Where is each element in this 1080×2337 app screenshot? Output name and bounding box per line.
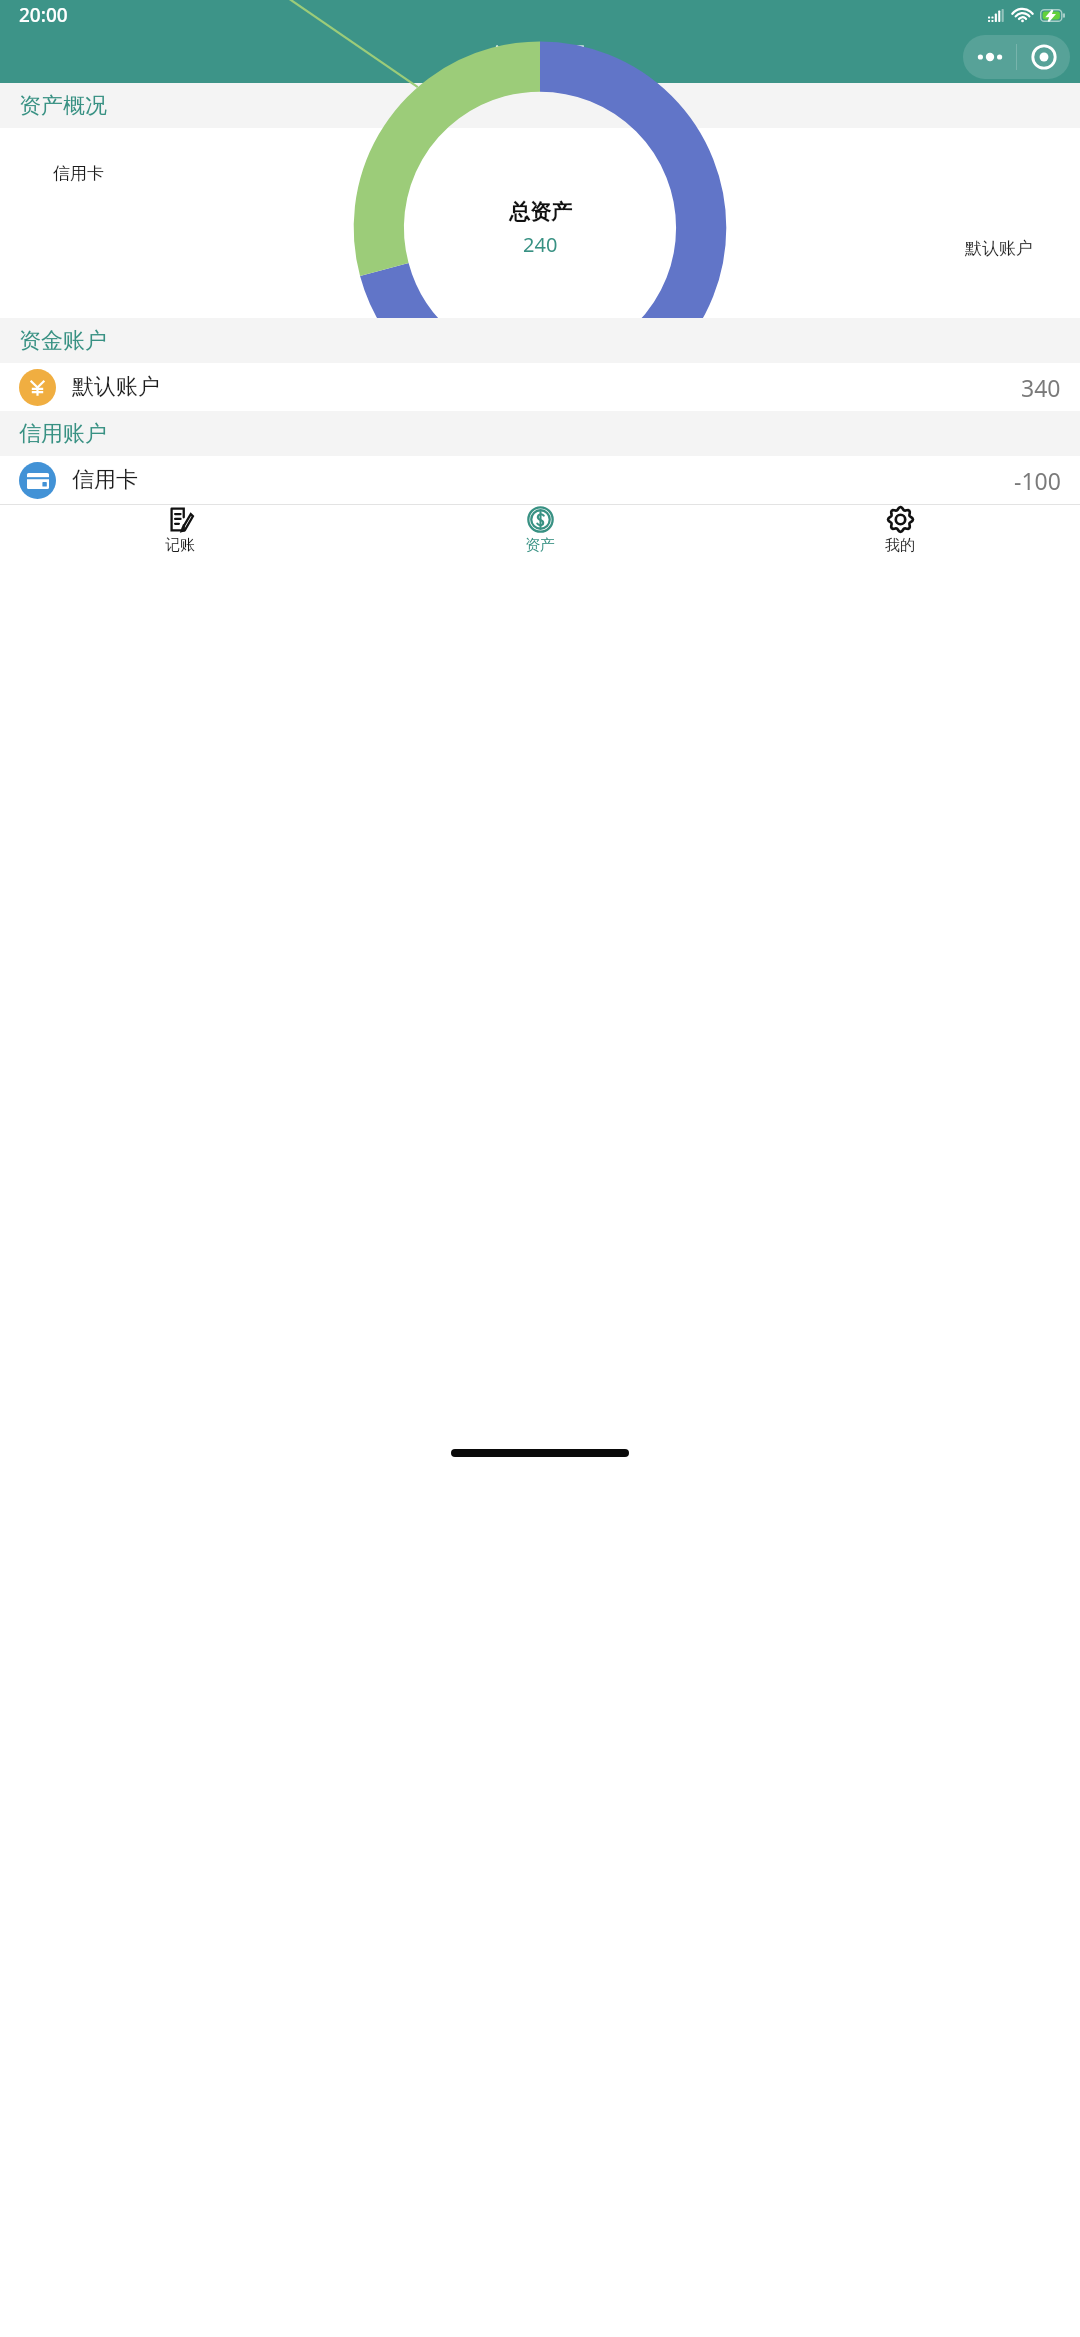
staticText: 资产概况 xyxy=(19,92,107,120)
staticText: 信用卡 xyxy=(53,163,104,184)
staticText: 资金账户 xyxy=(19,327,107,355)
staticText: 信用卡 xyxy=(72,466,138,494)
staticText: 资产 xyxy=(525,536,555,555)
staticText: 默认账户 xyxy=(72,373,160,401)
button[interactable]: 记账 xyxy=(0,505,360,556)
staticText: 20:00 xyxy=(19,2,68,28)
staticText: 340 xyxy=(1021,372,1061,403)
staticText: 信用账户 xyxy=(19,420,107,448)
button[interactable]: Close xyxy=(1017,35,1070,79)
button[interactable]: 默认账户 xyxy=(0,363,1080,411)
staticText: 默认账户 xyxy=(965,238,1033,259)
button[interactable]: 我的 xyxy=(720,505,1080,556)
button[interactable]: 信用卡 xyxy=(0,456,1080,504)
staticText: 资产管理 xyxy=(494,42,586,71)
staticText: 我的 xyxy=(885,536,915,555)
staticText: -100 xyxy=(1014,465,1061,496)
button[interactable]: More xyxy=(963,35,1016,79)
staticText: 总资产 xyxy=(509,199,572,225)
button[interactable]: 资产 xyxy=(360,505,720,556)
staticText: 240 xyxy=(523,231,558,258)
staticText: 记账 xyxy=(165,536,195,555)
